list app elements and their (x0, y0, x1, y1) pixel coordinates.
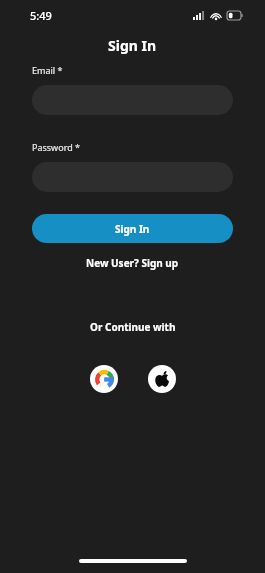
button[interactable]: New User? Sign up (80, 254, 185, 272)
staticText: New User? Sign up (86, 256, 179, 270)
button[interactable]: Continue with Apple (148, 365, 176, 393)
staticText: 5:49 (30, 8, 52, 23)
staticText: Password * (32, 141, 81, 153)
staticText: Sign In (108, 36, 157, 55)
staticText: Sign In (115, 222, 150, 236)
button[interactable]: Continue with Google (90, 365, 118, 393)
staticText: Email * (32, 64, 63, 76)
button[interactable]: Sign In (32, 214, 233, 243)
staticText: Or Continue with (90, 320, 176, 334)
